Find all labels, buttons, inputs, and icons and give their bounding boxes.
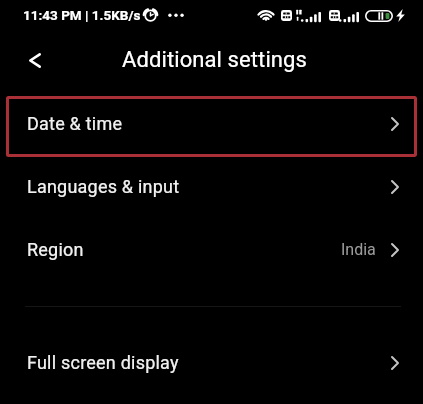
- button[interactable]: Full screen display: [0, 331, 423, 394]
- staticText: Full screen display: [27, 352, 179, 373]
- button[interactable]: Date & time: [0, 92, 423, 155]
- button[interactable]: Region: [0, 218, 423, 281]
- staticText: 11:43 PM | 1.5KB/s: [23, 7, 141, 23]
- staticText: India: [341, 240, 376, 259]
- button[interactable]: Languages & input: [0, 155, 423, 218]
- button[interactable]: Back: [14, 40, 55, 81]
- staticText: Additional settings: [3, 47, 423, 73]
- staticText: Date & time: [27, 113, 123, 134]
- staticText: Languages & input: [27, 176, 180, 197]
- staticText: Region: [27, 239, 84, 260]
